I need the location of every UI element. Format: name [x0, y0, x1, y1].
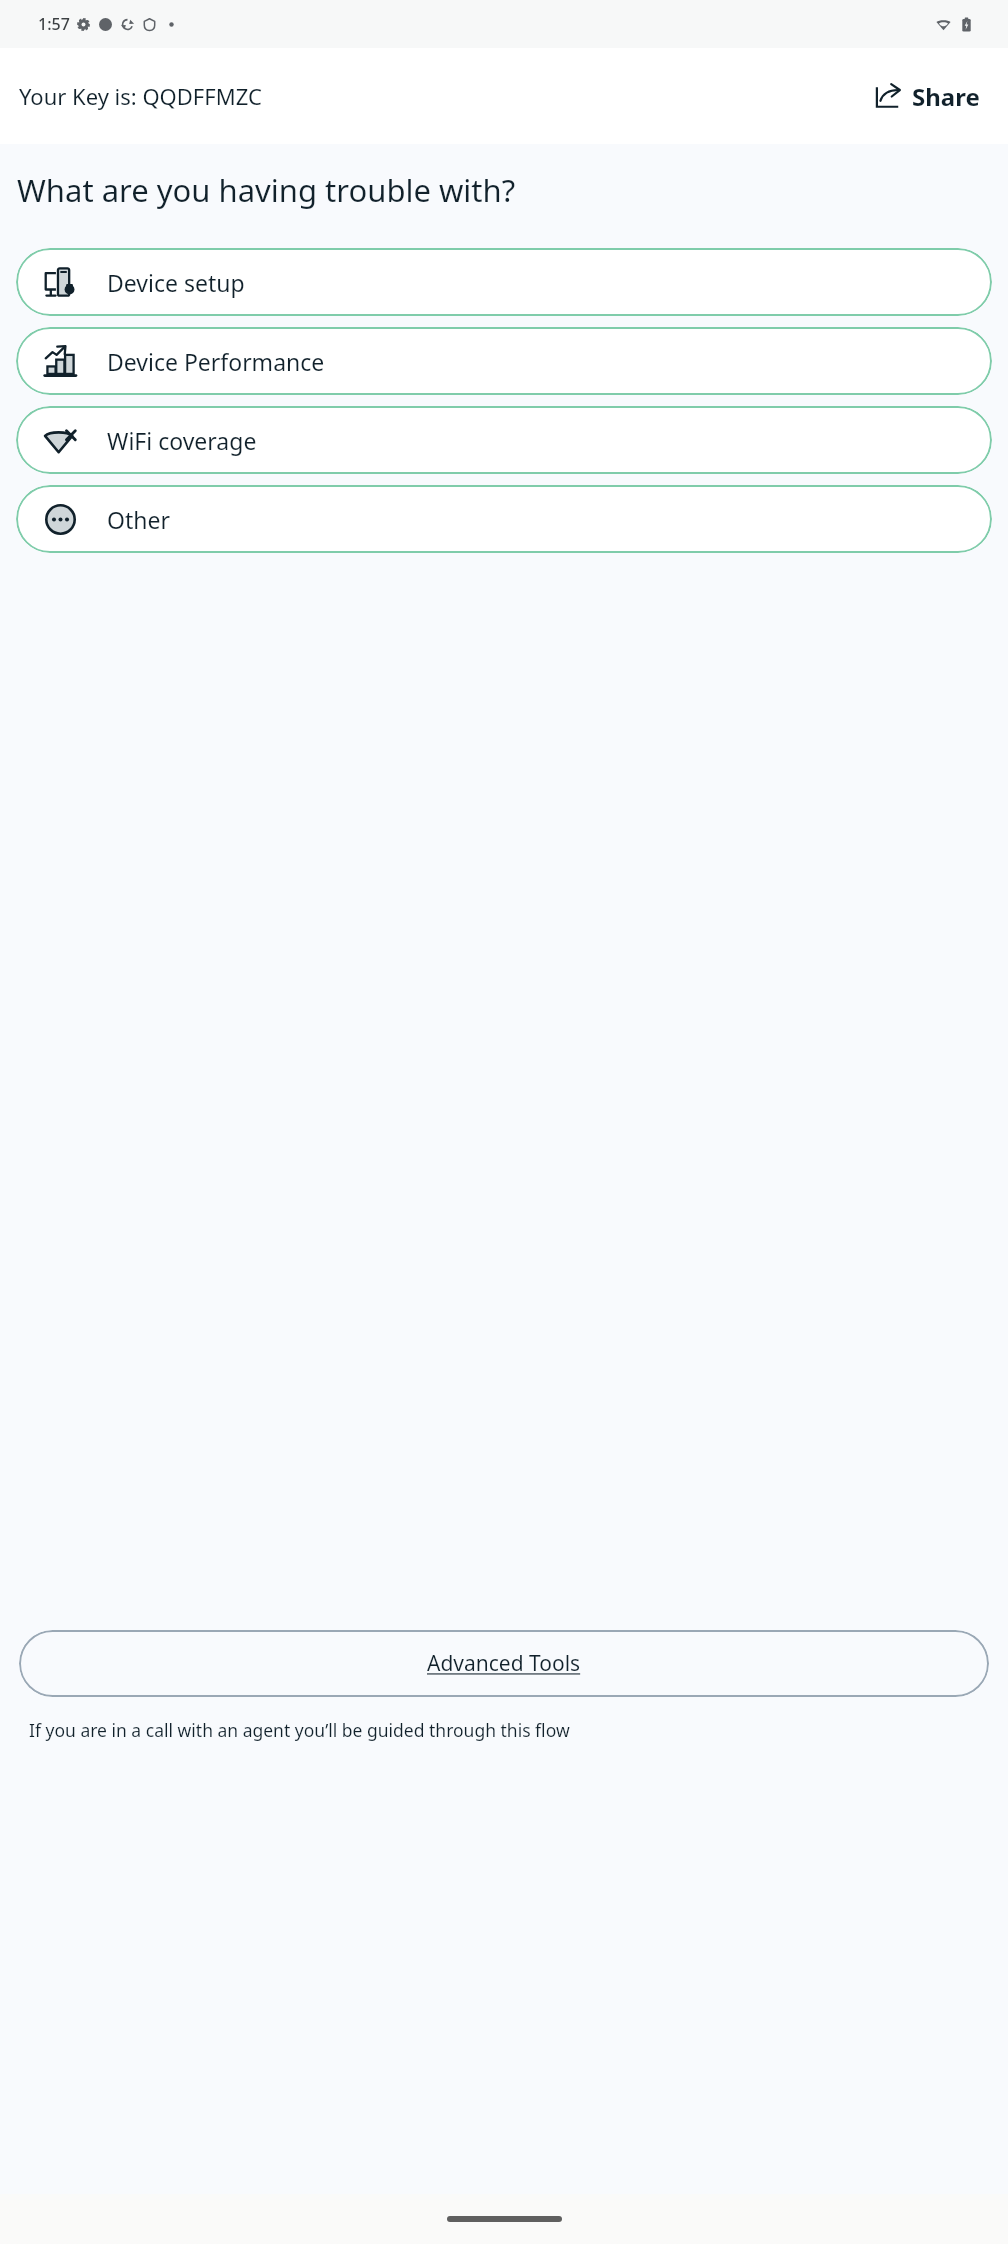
staticText: What are you having trouble with? — [17, 169, 516, 211]
staticText: WiFi coverage — [107, 425, 257, 456]
staticText: Your Key is: QQDFFMZC — [19, 81, 262, 111]
staticText: 1:57 — [38, 13, 70, 35]
button[interactable]: Device Performance — [16, 327, 992, 395]
button[interactable]: Other — [16, 485, 992, 553]
staticText: Share — [912, 80, 980, 113]
button[interactable]: Share — [869, 74, 986, 119]
staticText: Device Performance — [107, 346, 325, 377]
staticText: Device setup — [107, 267, 245, 298]
staticText: Advanced Tools — [427, 1649, 581, 1678]
button[interactable]: Advanced Tools — [19, 1630, 989, 1697]
staticText: If you are in a call with an agent you’l… — [29, 1718, 570, 1742]
staticText: Other — [107, 504, 170, 535]
button[interactable]: WiFi coverage — [16, 406, 992, 474]
button[interactable]: Device setup — [16, 248, 992, 316]
